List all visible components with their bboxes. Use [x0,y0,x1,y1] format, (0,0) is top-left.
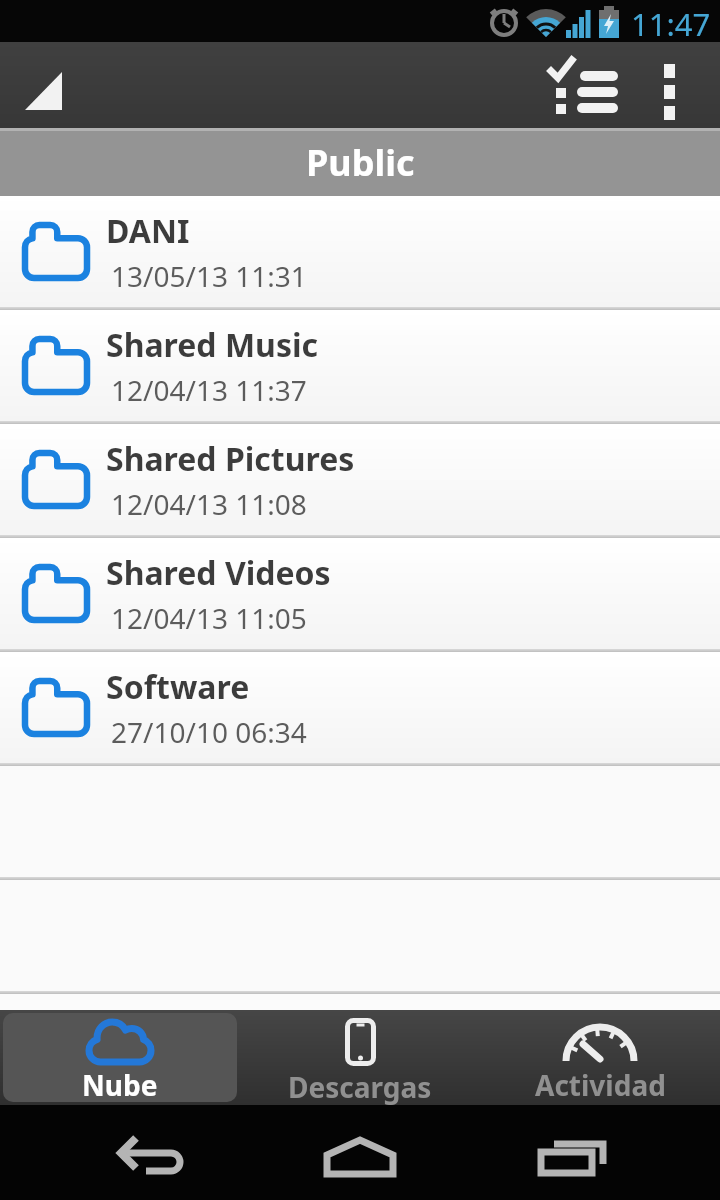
staticText: Descargas [288,1068,432,1105]
staticText: Software [106,665,250,709]
staticText: 13/05/13 11:31 [111,257,307,295]
button[interactable]: Shared Videos [0,538,720,649]
staticText: Public [306,138,415,187]
button[interactable] [105,1130,195,1180]
button[interactable]: Actividad [480,1010,720,1105]
button[interactable]: Shared Pictures [0,424,720,535]
button[interactable]: DANI [0,196,720,307]
button[interactable] [528,1130,618,1180]
staticText: Shared Videos [106,551,331,595]
button[interactable] [312,1130,408,1180]
staticText: 27/10/10 06:34 [111,713,307,751]
staticText: Nube [82,1066,158,1102]
button[interactable]: Nube [3,1013,237,1102]
button[interactable] [10,56,76,118]
staticText: Actividad [535,1066,666,1104]
staticText: 11:47 [631,3,711,45]
button[interactable]: Descargas [240,1010,480,1105]
staticText: Shared Pictures [106,437,355,481]
staticText: DANI [106,209,190,253]
button[interactable] [544,56,628,118]
button[interactable]: Software [0,652,720,763]
staticText: 12/04/13 11:05 [111,599,307,637]
button[interactable] [650,58,690,124]
button[interactable]: Shared Music [0,310,720,421]
staticText: Shared Music [106,323,319,367]
staticText: 12/04/13 11:37 [111,371,307,409]
staticText: 12/04/13 11:08 [111,485,307,523]
